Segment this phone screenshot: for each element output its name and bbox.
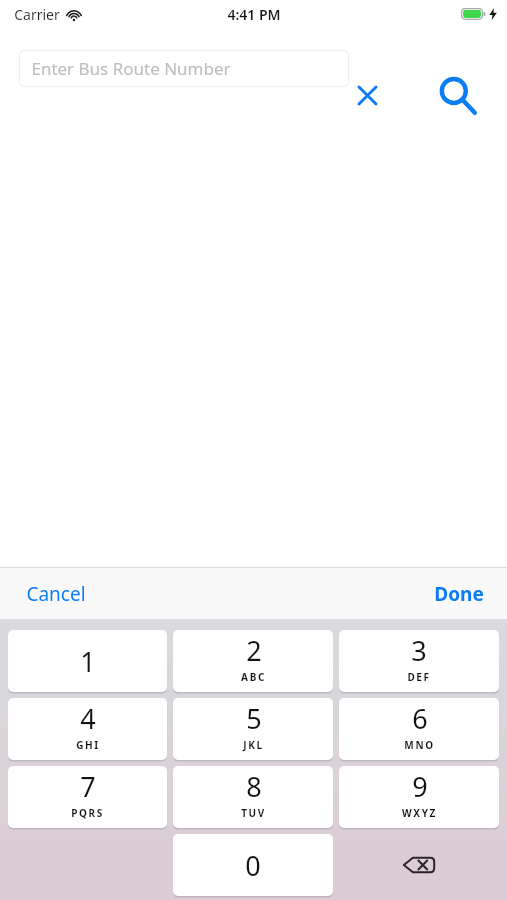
staticText: 5 <box>246 700 262 737</box>
staticText: ABC <box>241 670 266 684</box>
staticText: Enter Bus Route Number <box>31 57 231 80</box>
staticText: 1 <box>80 643 96 680</box>
staticText: JKL <box>243 738 264 752</box>
staticText: 6 <box>412 700 428 737</box>
button[interactable]: Clear text <box>352 80 383 111</box>
staticText: Cancel <box>26 581 86 607</box>
staticText: 2 <box>246 632 262 669</box>
button[interactable]: 1 <box>8 630 167 692</box>
staticText: WXYZ <box>402 806 437 820</box>
button[interactable]: Enter Bus Route Number <box>19 50 349 87</box>
staticText: Done <box>434 581 484 607</box>
staticText: MNO <box>404 738 435 752</box>
staticText: GHI <box>76 738 100 752</box>
staticText: 4:41 PM <box>227 5 281 24</box>
button[interactable]: 3 <box>339 630 499 692</box>
staticText: 9 <box>412 768 428 805</box>
staticText: DEF <box>407 670 431 684</box>
staticText: 4 <box>80 700 96 737</box>
staticText: PQRS <box>71 806 104 820</box>
button[interactable]: 9 <box>339 766 499 828</box>
staticText: 7 <box>80 768 96 805</box>
button[interactable]: Done <box>420 567 507 620</box>
button[interactable]: 4 <box>8 698 167 760</box>
button[interactable]: 7 <box>8 766 167 828</box>
button[interactable]: 6 <box>339 698 499 760</box>
button[interactable]: 0 <box>173 834 333 896</box>
staticText: 0 <box>245 847 261 884</box>
button[interactable]: Cancel <box>0 567 100 620</box>
staticText: TUV <box>241 806 266 820</box>
staticText: 8 <box>246 768 262 805</box>
staticText: Carrier <box>14 5 60 24</box>
button[interactable]: Backspace <box>339 834 499 896</box>
button[interactable]: 8 <box>173 766 333 828</box>
staticText: 3 <box>411 632 427 669</box>
button[interactable]: 2 <box>173 630 333 692</box>
button[interactable]: 5 <box>173 698 333 760</box>
button[interactable]: Search <box>432 70 484 122</box>
